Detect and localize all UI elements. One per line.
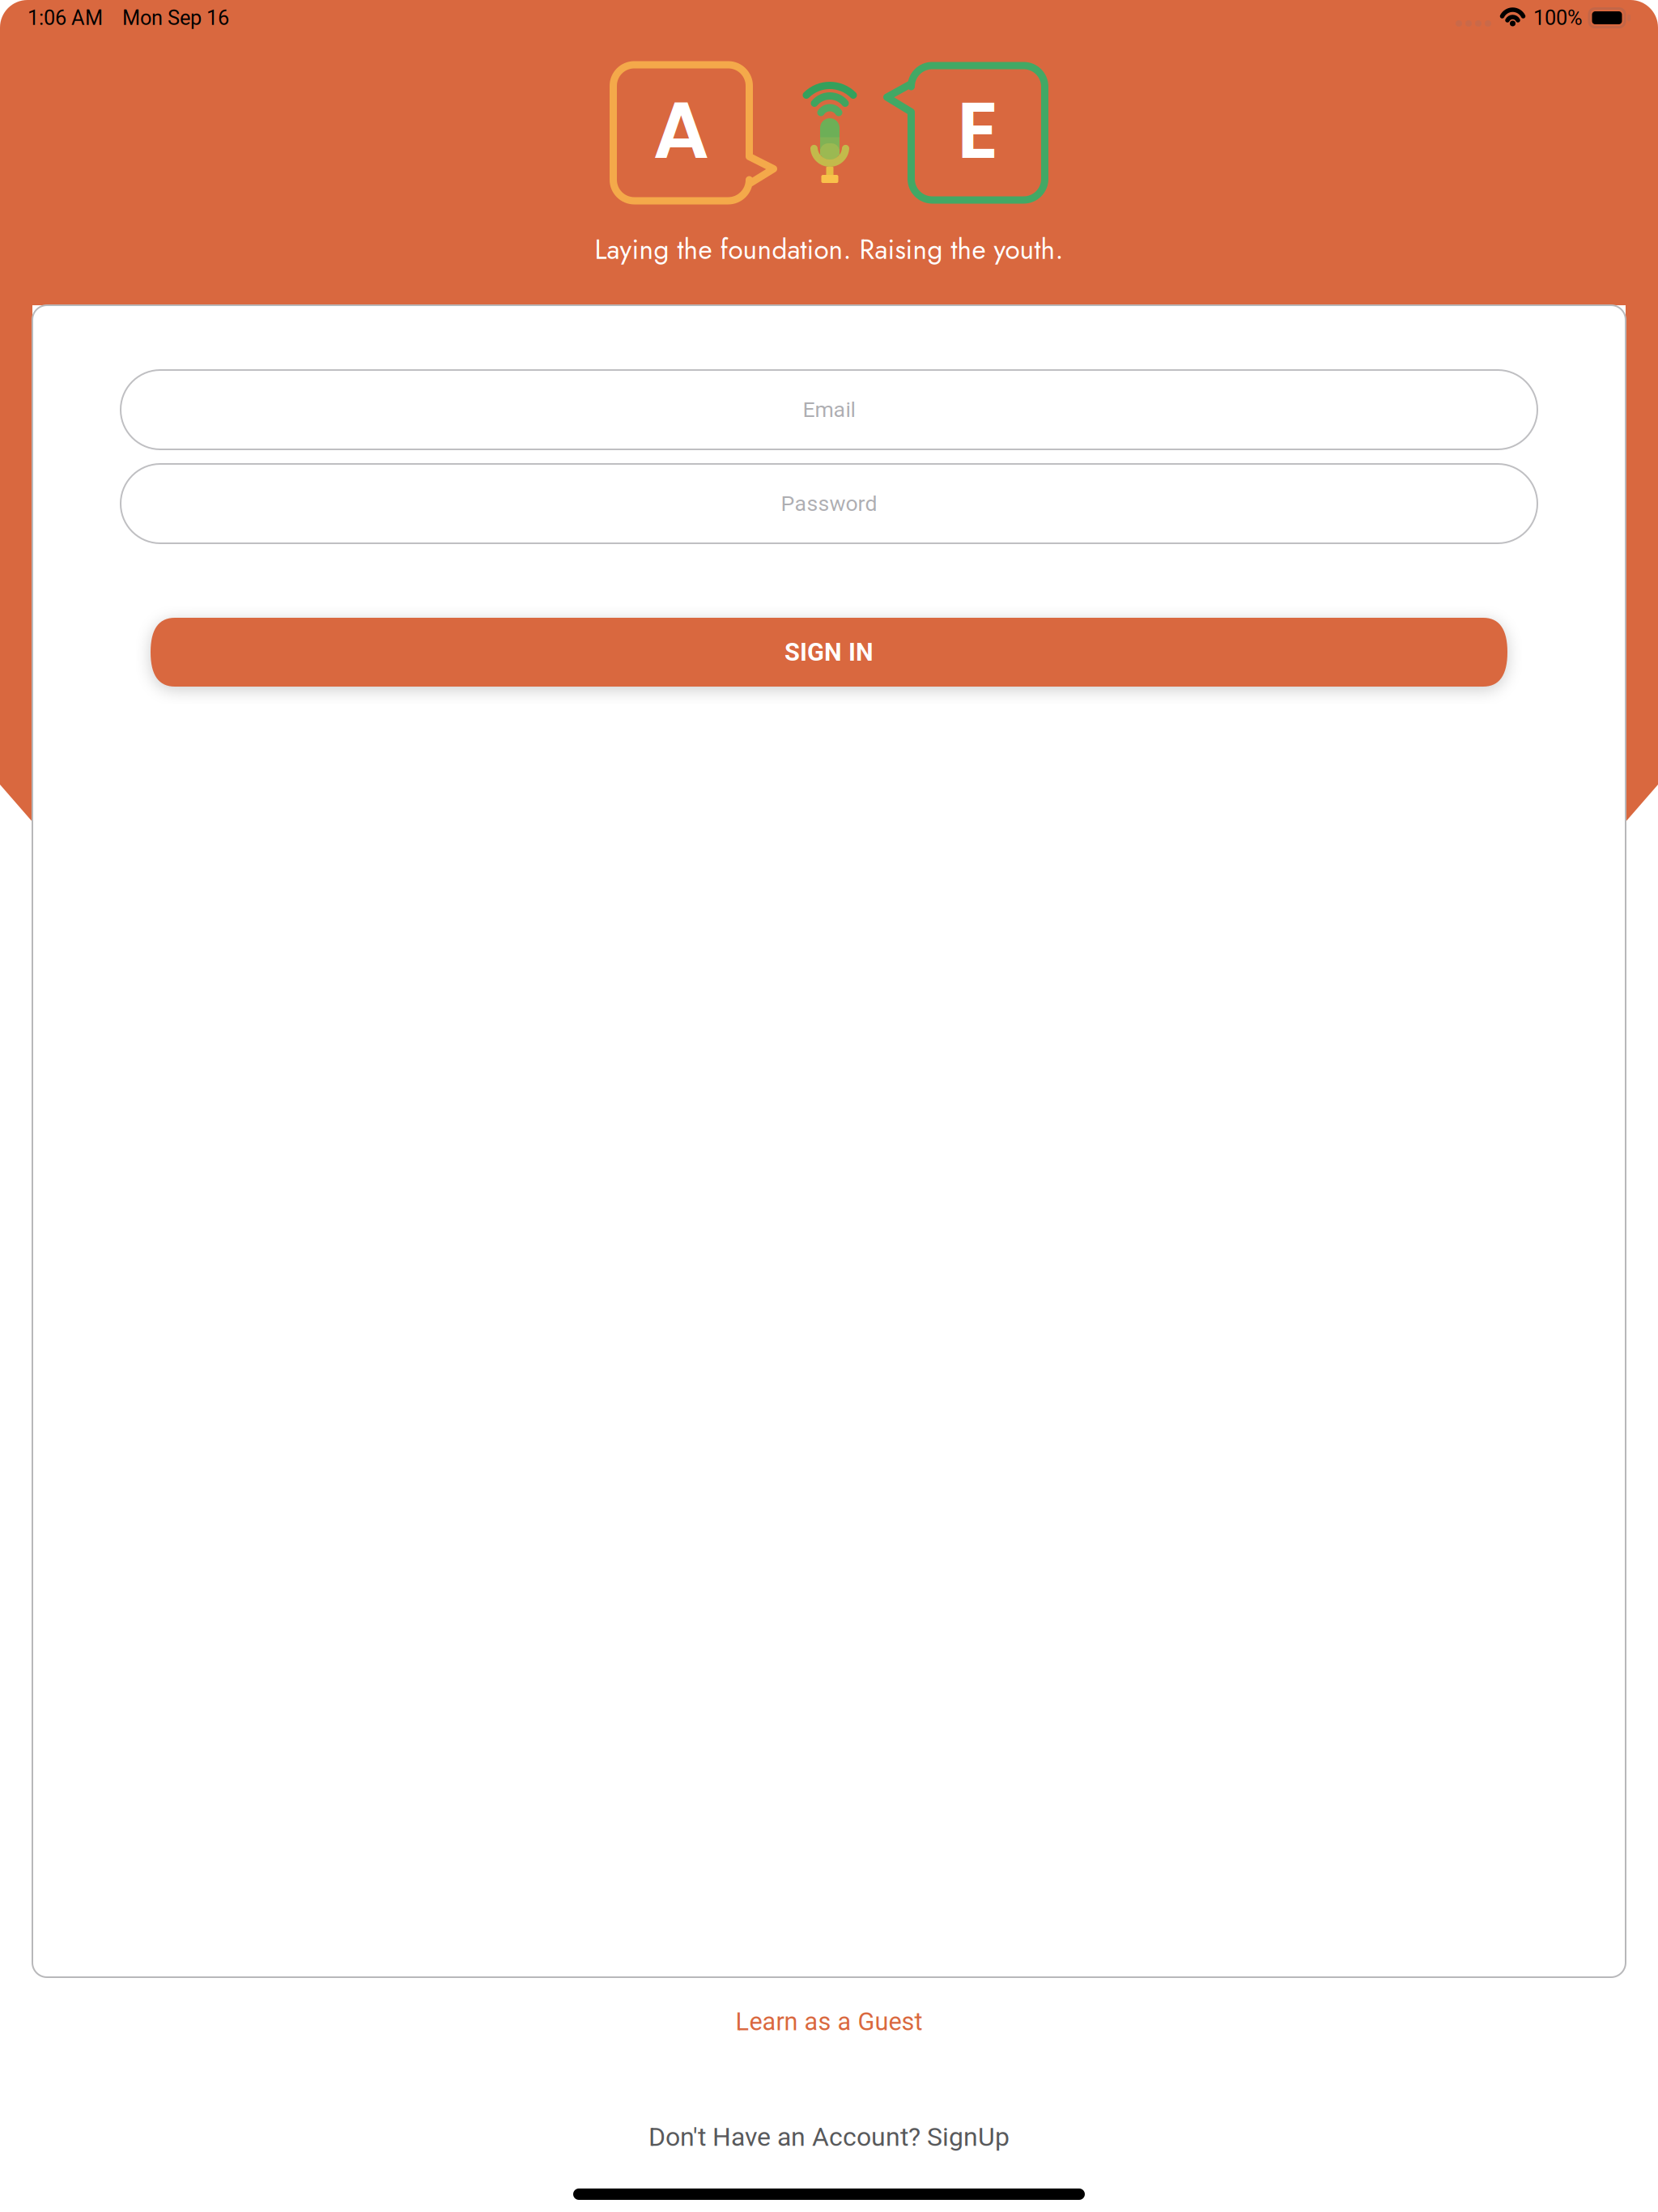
staticText: 1:06 AM	[28, 6, 103, 30]
staticText: Password	[781, 491, 877, 516]
staticText: Email	[803, 397, 855, 422]
staticText: A	[653, 75, 710, 186]
staticText: Learn as a Guest	[735, 2007, 923, 2036]
staticText: E	[957, 75, 999, 186]
staticText: Mon Sep 16	[122, 6, 229, 30]
button[interactable]: Email	[121, 370, 1537, 449]
staticText: Don't Have an Account? SignUp	[648, 2122, 1010, 2152]
button[interactable]: Don't Have an Account? SignUp	[648, 2122, 1010, 2152]
button[interactable]: Password	[121, 464, 1537, 543]
staticText: 100%	[1533, 6, 1583, 30]
staticText: SIGN IN	[784, 638, 874, 667]
staticText: Laying the foundation. Raising the youth…	[595, 230, 1063, 269]
button[interactable]: SIGN IN	[121, 618, 1537, 687]
button[interactable]: Learn as a Guest	[735, 2007, 923, 2036]
